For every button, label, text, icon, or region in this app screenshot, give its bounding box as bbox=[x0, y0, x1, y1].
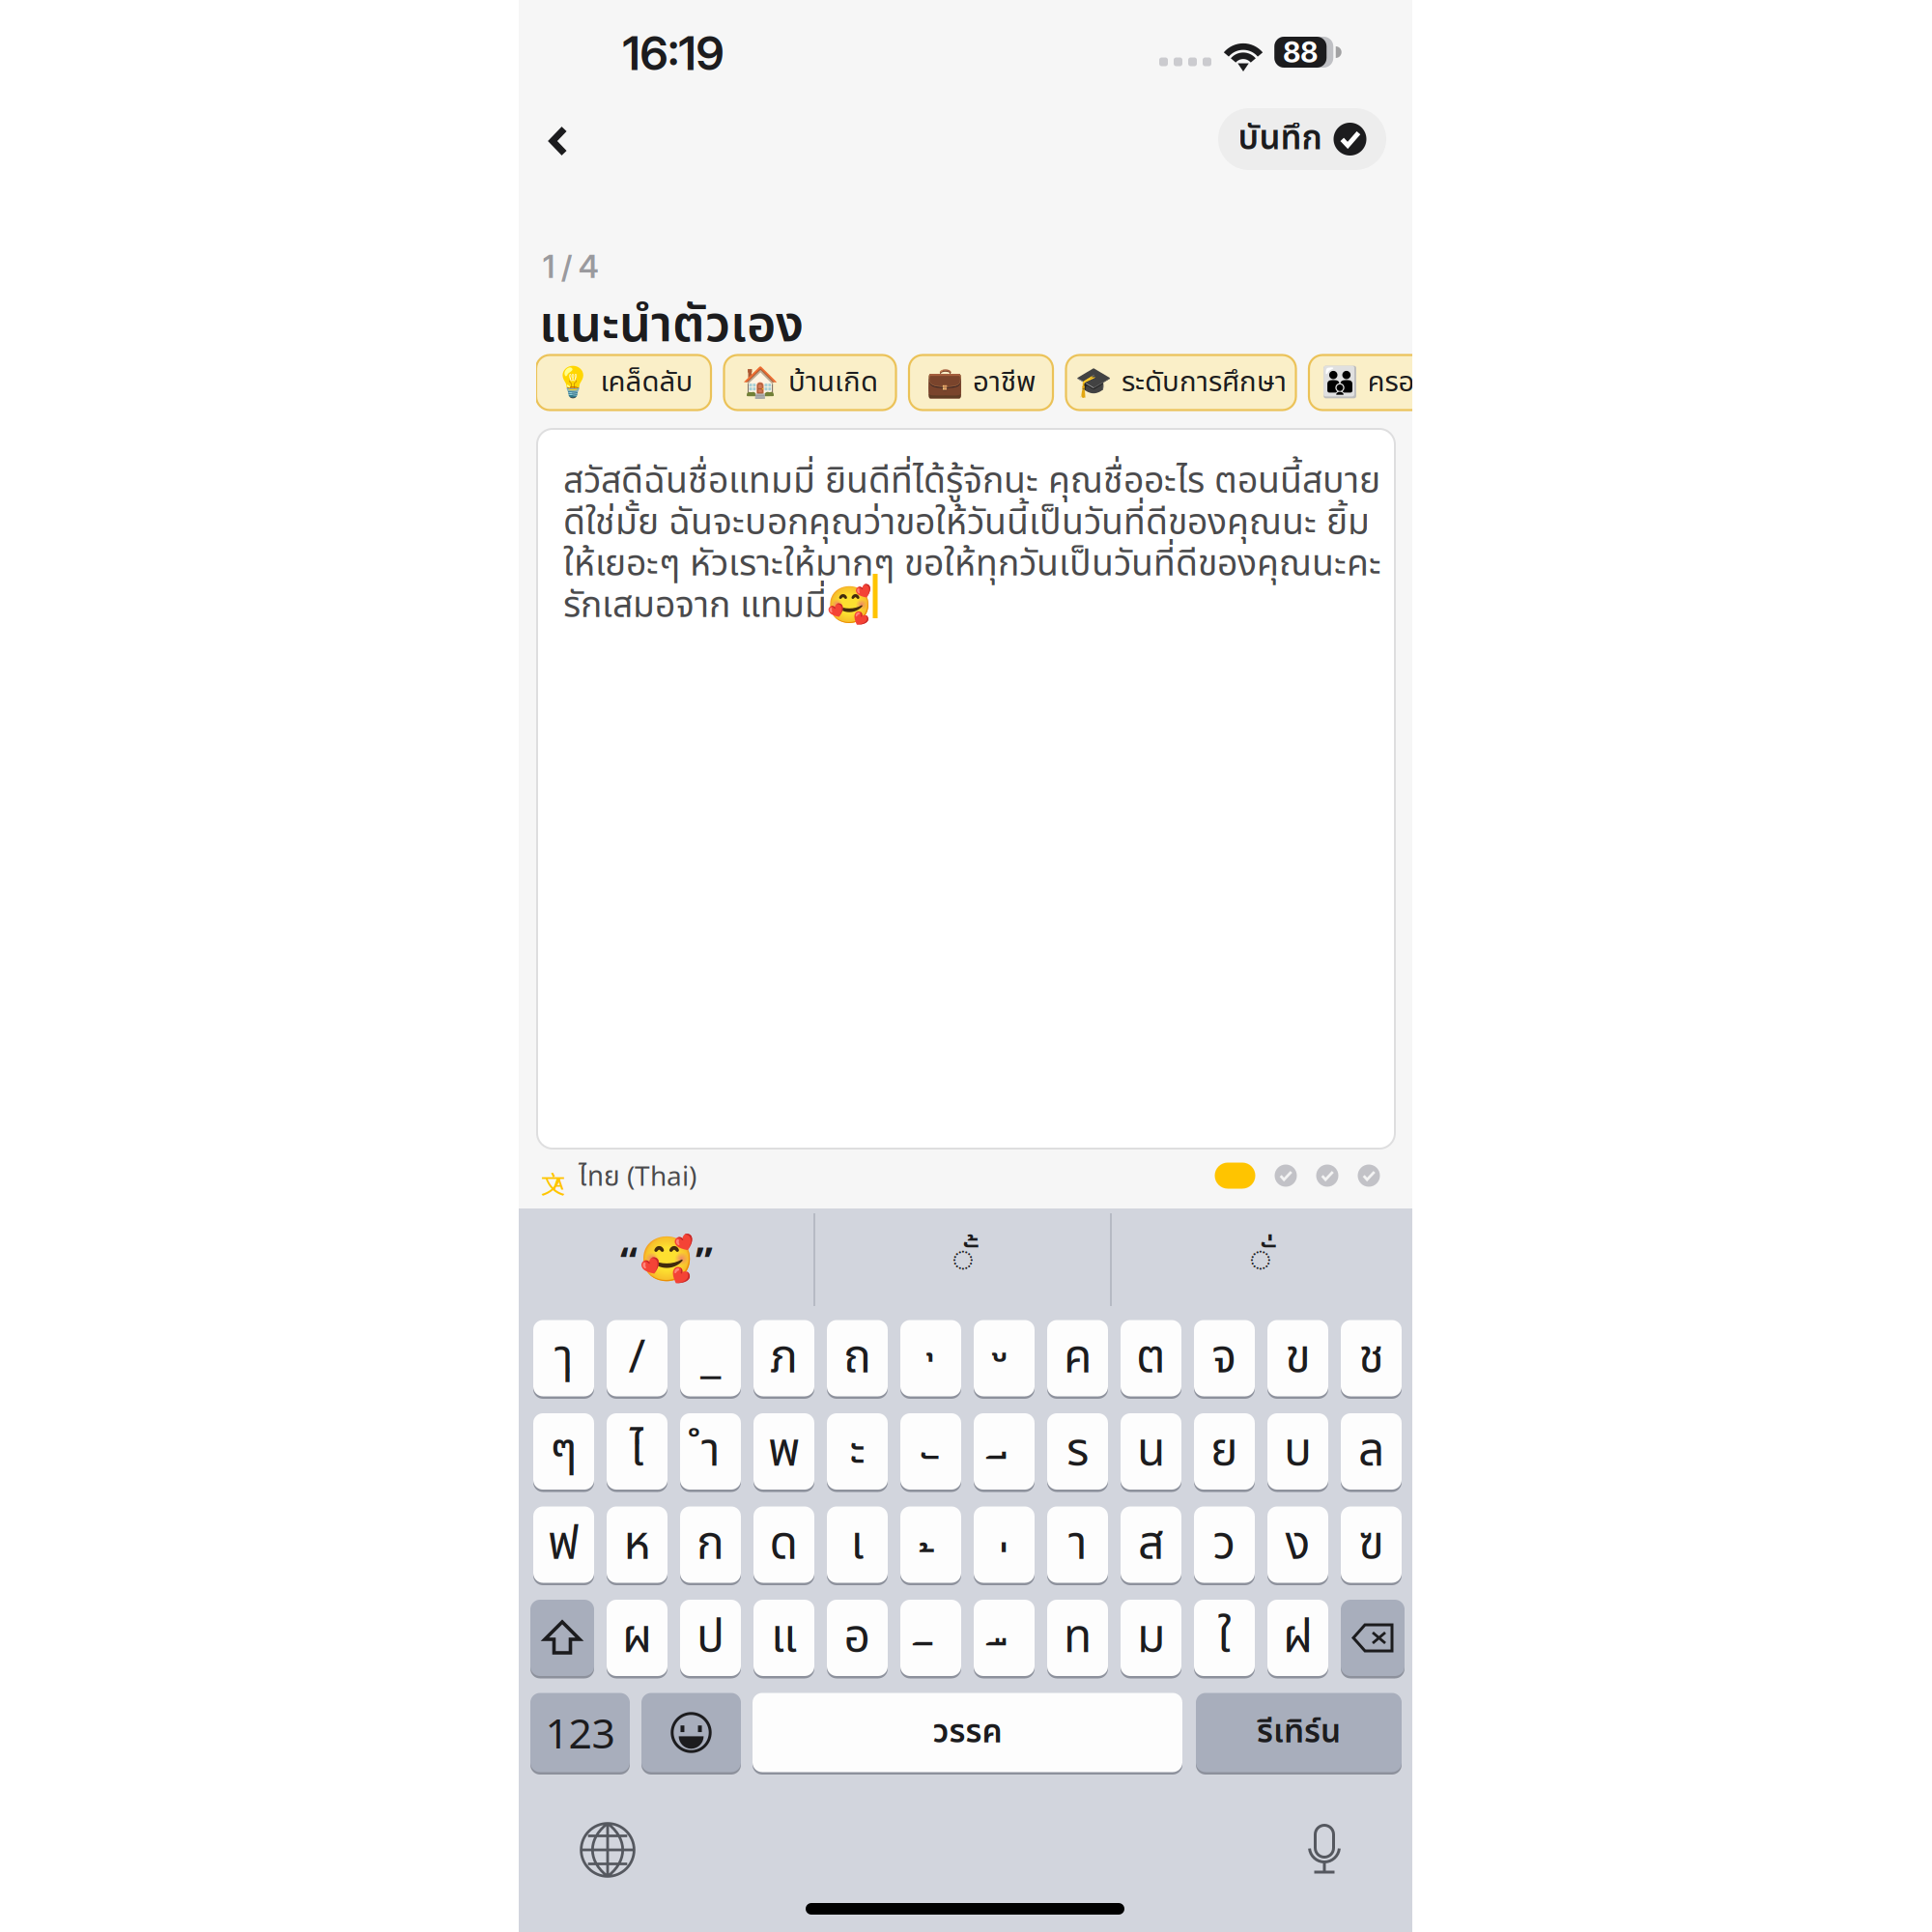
button[interactable]: ช bbox=[1341, 1319, 1402, 1398]
button[interactable]: รีเทิร์น bbox=[1196, 1691, 1402, 1774]
button[interactable]: น bbox=[1121, 1412, 1181, 1491]
button[interactable]: อ bbox=[827, 1598, 888, 1677]
button[interactable]: 🏠 bbox=[724, 355, 896, 410]
staticText: ฃ bbox=[1359, 1510, 1384, 1580]
staticText: 16:19 bbox=[623, 25, 724, 81]
staticText: จ bbox=[1212, 1323, 1237, 1393]
button[interactable]: แ bbox=[753, 1598, 814, 1677]
button[interactable]: ว bbox=[1194, 1505, 1255, 1584]
button[interactable]: _ bbox=[680, 1319, 741, 1398]
button[interactable]: ย bbox=[1194, 1412, 1255, 1491]
button[interactable]: ต bbox=[1121, 1319, 1181, 1398]
staticText: ส bbox=[1138, 1510, 1164, 1580]
staticText: ฟ bbox=[548, 1510, 580, 1580]
staticText: ว bbox=[1213, 1510, 1236, 1580]
staticText: ำ bbox=[701, 1416, 720, 1486]
button[interactable]: ำ bbox=[680, 1412, 741, 1491]
button[interactable]: ค bbox=[1047, 1319, 1108, 1398]
staticText: ย bbox=[1210, 1416, 1238, 1486]
button[interactable]: ฟ bbox=[533, 1505, 594, 1584]
staticText: ครอบครัว bbox=[1367, 361, 1477, 404]
staticText: ถ bbox=[843, 1323, 871, 1393]
button[interactable]: ่ bbox=[974, 1505, 1035, 1584]
button[interactable]: วรรค bbox=[753, 1691, 1182, 1774]
button[interactable]: ด bbox=[753, 1505, 814, 1584]
button[interactable]: ป bbox=[680, 1598, 741, 1677]
button[interactable]: Delete bbox=[1341, 1598, 1405, 1677]
staticText: A bbox=[553, 1175, 564, 1193]
button[interactable]: า bbox=[1047, 1505, 1108, 1584]
staticText: 1 / 4 bbox=[543, 248, 599, 285]
button[interactable]: พ bbox=[753, 1412, 814, 1491]
staticText: ร bbox=[1066, 1416, 1089, 1486]
button[interactable]: จ bbox=[1194, 1319, 1255, 1398]
staticText: ต bbox=[1136, 1323, 1166, 1393]
staticText: ภ bbox=[770, 1323, 798, 1393]
button[interactable]: ุ bbox=[900, 1319, 961, 1398]
staticText: ี bbox=[998, 1440, 1010, 1510]
button[interactable]: ง bbox=[1267, 1505, 1328, 1584]
button[interactable]: ะ bbox=[827, 1412, 888, 1491]
button[interactable]: ไ bbox=[607, 1412, 668, 1491]
button[interactable]: / bbox=[607, 1319, 668, 1398]
button[interactable]: 💼 bbox=[909, 355, 1053, 410]
button[interactable]: 123 bbox=[530, 1691, 630, 1774]
button[interactable]: Shift bbox=[530, 1598, 594, 1677]
button[interactable]: Dictation bbox=[1281, 1806, 1368, 1893]
staticText: ๅ bbox=[554, 1323, 573, 1393]
button[interactable]: 🎓 bbox=[1066, 355, 1296, 410]
button[interactable]: เ bbox=[827, 1505, 888, 1584]
button[interactable]: ร bbox=[1047, 1412, 1108, 1491]
staticText: บันทึก bbox=[1238, 114, 1322, 164]
staticText: ผ bbox=[622, 1603, 652, 1673]
button[interactable]: Back bbox=[523, 105, 594, 177]
button[interactable]: ฃ bbox=[1341, 1505, 1402, 1584]
button[interactable]: ั่ bbox=[1121, 1210, 1401, 1309]
staticText: ๆ bbox=[550, 1416, 578, 1486]
button[interactable]: ั้ bbox=[823, 1210, 1103, 1309]
staticText: ง bbox=[1285, 1510, 1310, 1580]
button[interactable]: ู bbox=[974, 1319, 1035, 1398]
button[interactable]: ิ bbox=[900, 1598, 961, 1677]
staticText: ท bbox=[1064, 1603, 1092, 1673]
button[interactable]: 👪 bbox=[1309, 355, 1489, 410]
staticText: ั้ bbox=[952, 1230, 975, 1289]
button[interactable]: ฝ bbox=[1267, 1598, 1328, 1677]
staticText: 🎓 bbox=[1075, 365, 1112, 400]
staticText: บ้านเกิด bbox=[788, 361, 878, 404]
button[interactable]: ก bbox=[680, 1505, 741, 1584]
button[interactable]: ส bbox=[1121, 1505, 1181, 1584]
staticText: ั่ bbox=[1249, 1230, 1272, 1289]
button[interactable]: ม bbox=[1121, 1598, 1181, 1677]
staticText: ั bbox=[925, 1440, 937, 1510]
staticText: สวัสดีฉันชื่อแทมมี่ ยินดีที่ได้รู้จักนะ … bbox=[563, 454, 1381, 633]
button[interactable]: ผ bbox=[607, 1598, 668, 1677]
button[interactable]: ี bbox=[974, 1412, 1035, 1491]
staticText: พ bbox=[768, 1416, 800, 1486]
button[interactable]: Next keyboard bbox=[564, 1806, 651, 1893]
staticText: ไทย (Thai) bbox=[579, 1157, 696, 1198]
staticText: วรรค bbox=[933, 1708, 1002, 1757]
button[interactable]: ๆ bbox=[533, 1412, 594, 1491]
button[interactable]: “ bbox=[526, 1210, 807, 1309]
staticText: ล bbox=[1358, 1416, 1384, 1486]
button[interactable]: ใ bbox=[1194, 1598, 1255, 1677]
button[interactable]: บ bbox=[1267, 1412, 1328, 1491]
button[interactable]: บันทึก bbox=[1218, 108, 1386, 170]
staticText: ม bbox=[1137, 1603, 1165, 1673]
button[interactable]: 💡 bbox=[536, 355, 711, 410]
staticText: ข bbox=[1285, 1323, 1310, 1393]
button[interactable]: ภ bbox=[753, 1319, 814, 1398]
button[interactable]: Emoji bbox=[641, 1691, 741, 1774]
button[interactable]: ข bbox=[1267, 1319, 1328, 1398]
button[interactable]: ื bbox=[974, 1598, 1035, 1677]
staticText: ้ bbox=[925, 1533, 937, 1603]
button[interactable]: ห bbox=[607, 1505, 668, 1584]
button[interactable]: ้ bbox=[900, 1505, 961, 1584]
button[interactable]: ๅ bbox=[533, 1319, 594, 1398]
staticText: “ bbox=[620, 1234, 638, 1285]
button[interactable]: ั bbox=[900, 1412, 961, 1491]
button[interactable]: ล bbox=[1341, 1412, 1402, 1491]
button[interactable]: ท bbox=[1047, 1598, 1108, 1677]
button[interactable]: ถ bbox=[827, 1319, 888, 1398]
